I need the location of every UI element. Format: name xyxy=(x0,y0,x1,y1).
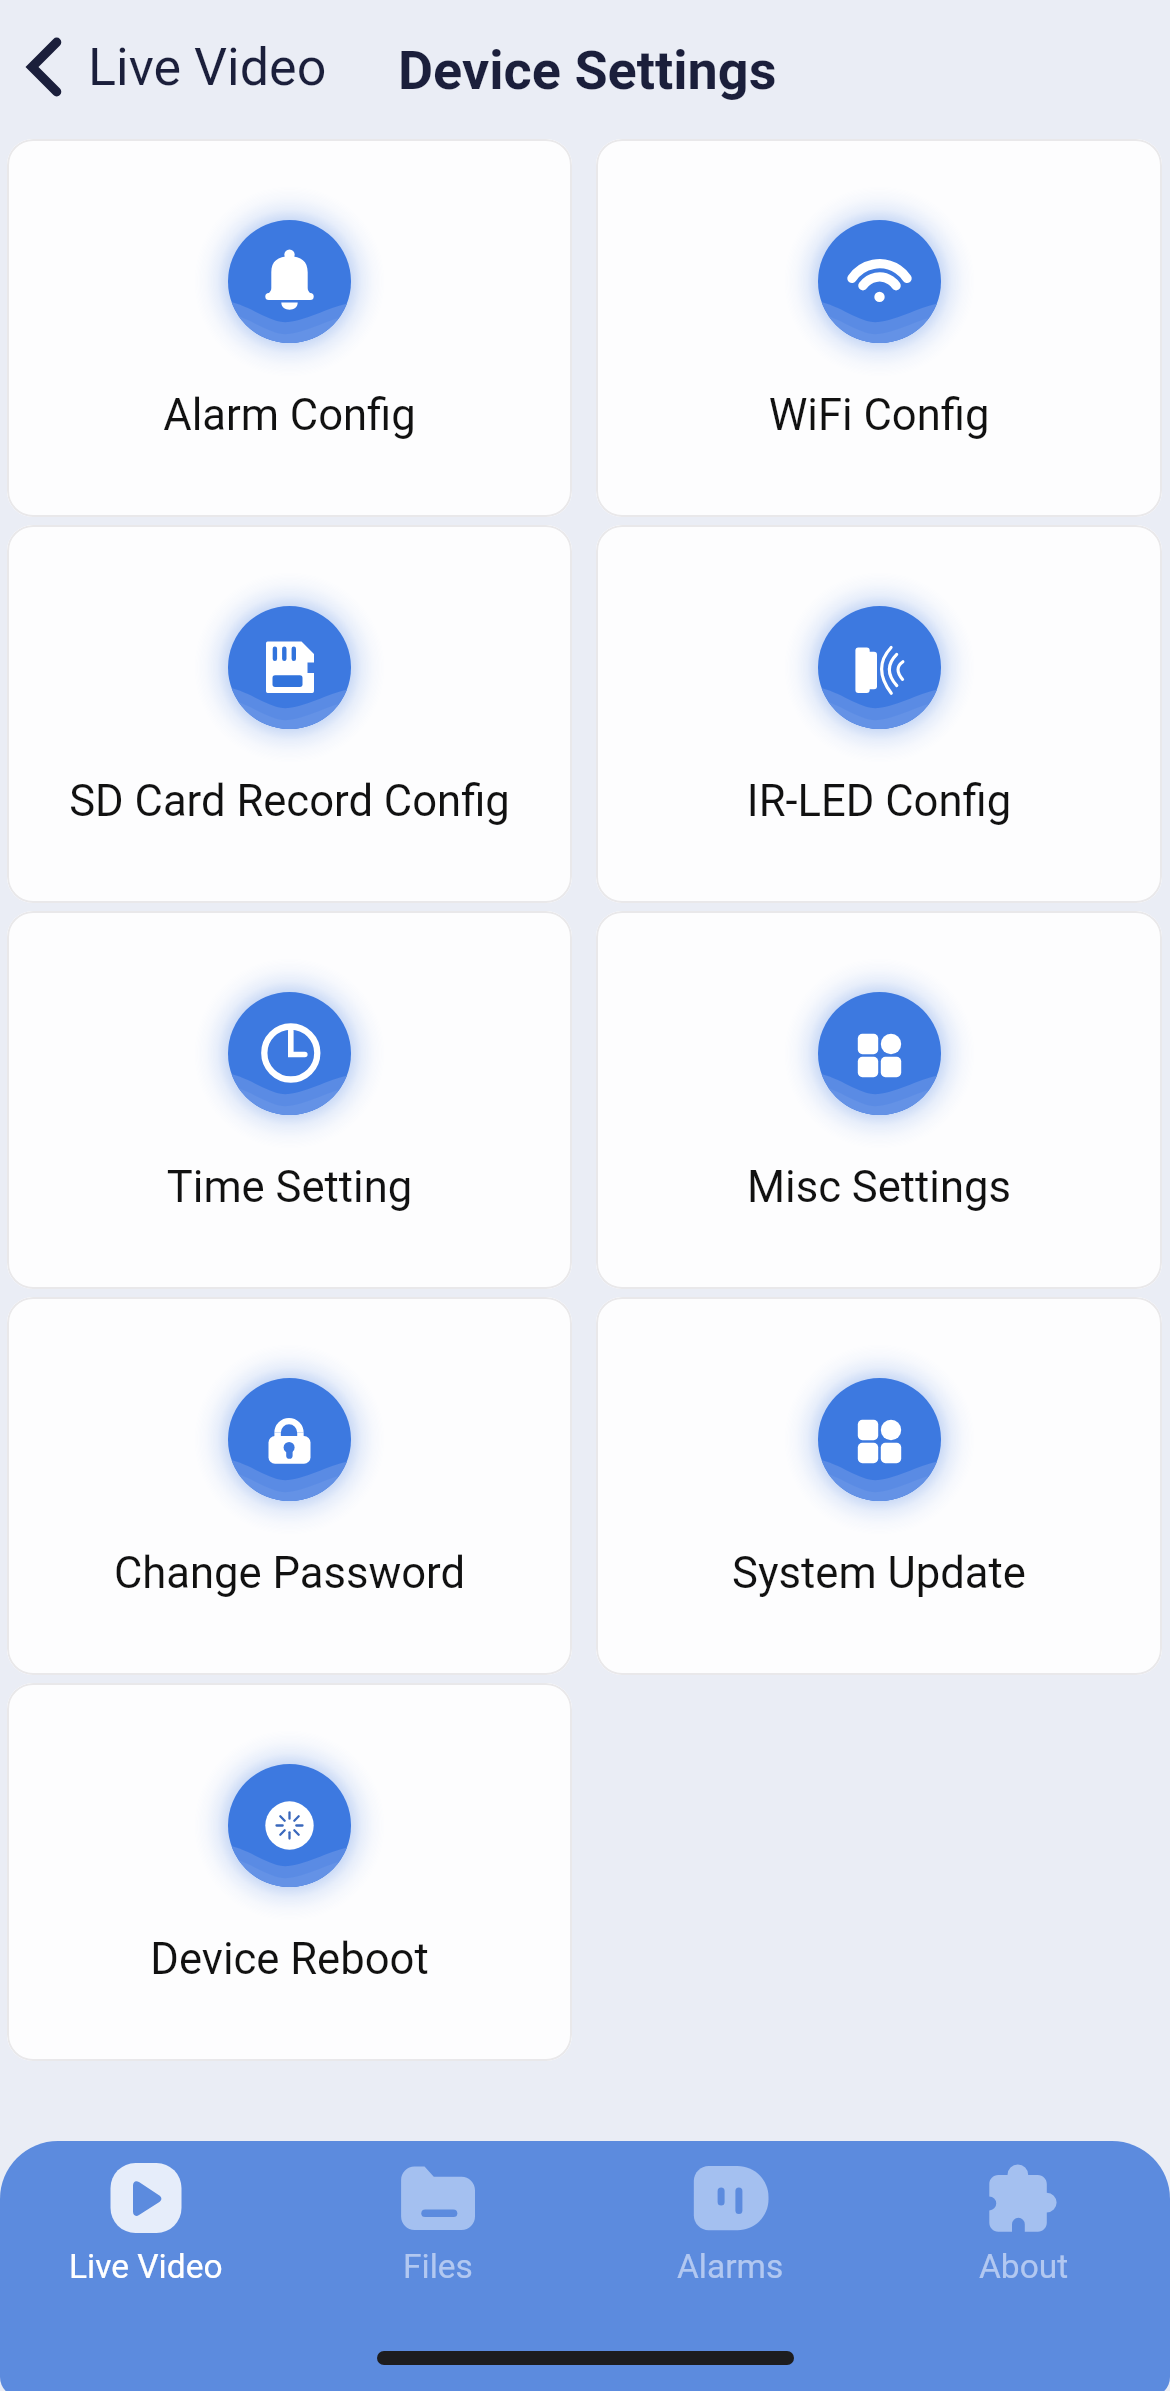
button[interactable]: Time Setting xyxy=(7,911,572,1289)
button[interactable]: Live Video xyxy=(0,2141,292,2316)
button[interactable]: WiFi Config xyxy=(596,139,1162,517)
button[interactable]: System Update xyxy=(596,1297,1162,1675)
staticText: IR-LED Config xyxy=(596,776,1162,827)
staticText: Live Video xyxy=(88,37,327,98)
staticText: Change Password xyxy=(7,1548,572,1599)
staticText: Alarm Config xyxy=(7,390,572,441)
staticText: SD Card Record Config xyxy=(7,776,572,827)
button[interactable]: IR-LED Config xyxy=(596,525,1162,903)
staticText: System Update xyxy=(596,1548,1162,1599)
button[interactable]: Back to Live Video xyxy=(18,12,327,122)
button[interactable]: Alarm Config xyxy=(7,139,572,517)
button[interactable]: About xyxy=(877,2141,1170,2316)
button[interactable]: Alarms xyxy=(584,2141,877,2316)
staticText: Device Reboot xyxy=(7,1934,572,1985)
staticText: Time Setting xyxy=(7,1162,572,1213)
button[interactable]: Files xyxy=(292,2141,584,2316)
staticText: Files xyxy=(403,2247,473,2286)
staticText: About xyxy=(979,2247,1069,2286)
staticText: Misc Settings xyxy=(596,1162,1162,1213)
staticText: Alarms xyxy=(677,2247,784,2286)
staticText: Live Video xyxy=(69,2247,223,2286)
button[interactable]: SD Card Record Config xyxy=(7,525,572,903)
button[interactable]: Device Reboot xyxy=(7,1683,572,2061)
other: Back to Live Video xyxy=(18,36,62,98)
staticText: WiFi Config xyxy=(596,390,1162,441)
button[interactable]: Change Password xyxy=(7,1297,572,1675)
staticText: Device Settings xyxy=(398,39,777,102)
button[interactable]: Misc Settings xyxy=(596,911,1162,1289)
